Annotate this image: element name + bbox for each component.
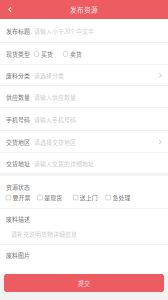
staticText: 资源状态 [6,183,30,191]
staticText: 提交 [78,279,90,287]
button[interactable]: 交货地址 [0,153,168,174]
staticText: 送上门 [80,193,98,202]
staticText: 发布标题 [6,27,30,35]
staticText: 交货地址 [6,159,30,168]
staticText: 买货 [41,50,53,58]
staticText: 请选择分类 [34,71,64,80]
staticText: 废料分类 [6,71,30,80]
staticText: 供应数量 [6,93,30,101]
button[interactable]: 送上门 [73,193,98,202]
staticText: 手机号码 [6,115,30,124]
staticText: 要开票 [13,193,31,202]
staticText: 卖货 [70,50,82,58]
staticText: 急处理 [112,193,130,202]
button[interactable]: 现货类型 [0,43,168,65]
staticText: 废料图片 [6,251,30,259]
button[interactable]: 急处理 [106,193,130,202]
button[interactable]: 买货 [34,50,53,58]
button[interactable]: Back [0,0,20,19]
staticText: 现货类型 [6,50,30,58]
staticText: 是现货 [44,193,62,202]
button[interactable]: 废料分类 [0,65,168,86]
staticText: 请输入供应数量 [34,93,76,101]
staticText: 废料描述 [6,215,30,223]
staticText: 请补充说明货物详细信息 [11,230,77,238]
button[interactable]: 供应数量 [0,86,168,108]
button[interactable]: 是现货 [38,193,62,202]
staticText: 请输入交货的详细地址 [34,159,94,168]
staticText: 交货地区 [6,138,30,146]
staticText: 请输入小于20个中文字 [34,27,94,35]
staticText: 发布资源 [70,5,98,14]
staticText: 请输入手机号码 [34,115,76,124]
button[interactable]: 手机号码 [0,108,168,131]
staticText: 请选择交货地区 [34,138,76,146]
button[interactable]: 交货地区 [0,131,168,153]
button[interactable]: 发布标题 [0,19,168,43]
button[interactable]: 要开票 [6,193,31,202]
button[interactable]: 卖货 [63,50,82,58]
button[interactable]: 提交 [4,274,164,292]
